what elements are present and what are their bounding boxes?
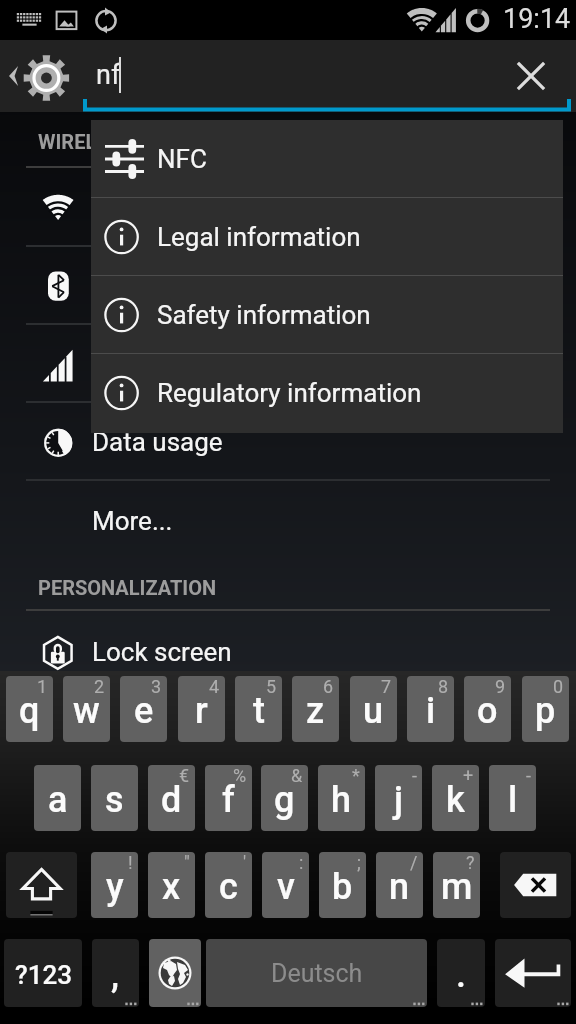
- button[interactable]: Change keyboard language: [149, 939, 201, 1007]
- button[interactable]: c: [205, 852, 252, 918]
- button[interactable]: b: [319, 852, 366, 918]
- button[interactable]: i: [407, 676, 454, 742]
- button[interactable]: d: [148, 765, 195, 831]
- staticText: 5: [266, 676, 277, 697]
- button[interactable]: Mobile networks: [0, 325, 576, 403]
- button[interactable]: Legal information: [91, 198, 563, 275]
- button[interactable]: Lock screen: [0, 615, 576, 689]
- staticText: ?123: [15, 960, 72, 990]
- staticText: ,: [111, 954, 120, 996]
- staticText: v: [277, 866, 295, 908]
- staticText: 0: [553, 676, 564, 697]
- staticText: Lock screen: [92, 637, 232, 667]
- button[interactable]: q: [6, 676, 53, 742]
- staticText: !: [128, 852, 133, 873]
- staticText: 4: [209, 676, 220, 697]
- button[interactable]: j: [375, 765, 422, 831]
- button[interactable]: Data usage: [0, 403, 576, 481]
- button[interactable]: Enter: [495, 939, 571, 1007]
- staticText: 6: [323, 676, 334, 697]
- staticText: Data usage: [92, 427, 223, 457]
- button[interactable]: t: [235, 676, 282, 742]
- staticText: 8: [438, 676, 449, 697]
- staticText: g: [274, 779, 295, 821]
- button[interactable]: Safety information: [91, 276, 563, 353]
- staticText: €: [179, 765, 190, 786]
- button[interactable]: f: [205, 765, 252, 831]
- button[interactable]: Wi-Fi: [0, 169, 576, 247]
- button[interactable]: Navigate up, Settings: [0, 40, 76, 112]
- staticText: s: [105, 779, 124, 821]
- staticText: ": [184, 852, 190, 873]
- staticText: &: [291, 765, 303, 786]
- staticText: u: [363, 690, 384, 732]
- staticText: Mobile networks: [92, 349, 284, 379]
- staticText: PERSONALIZATION: [38, 576, 217, 599]
- staticText: c: [219, 866, 238, 908]
- staticText: y: [106, 866, 124, 908]
- staticText: Legal information: [157, 222, 361, 252]
- staticText: ;: [357, 852, 361, 873]
- button[interactable]: g: [261, 765, 308, 831]
- staticText: ?: [466, 852, 475, 873]
- button[interactable]: a: [34, 765, 81, 831]
- staticText: -: [526, 765, 531, 786]
- staticText: :: [299, 852, 304, 873]
- button[interactable]: .: [437, 939, 485, 1007]
- staticText: o: [477, 690, 498, 732]
- button[interactable]: ?123: [4, 939, 82, 1007]
- button[interactable]: n: [376, 852, 423, 918]
- staticText: b: [332, 866, 353, 908]
- staticText: r: [195, 690, 208, 732]
- button[interactable]: w: [63, 676, 110, 742]
- staticText: j: [394, 779, 404, 821]
- staticText: m: [441, 866, 473, 908]
- staticText: +: [463, 765, 474, 786]
- button[interactable]: Regulatory information: [91, 354, 563, 432]
- button[interactable]: u: [350, 676, 397, 742]
- staticText: 3: [151, 676, 162, 697]
- staticText: e: [134, 690, 154, 732]
- button[interactable]: m: [433, 852, 480, 918]
- button[interactable]: ,: [92, 939, 139, 1007]
- staticText: a: [48, 779, 68, 821]
- button[interactable]: Backspace: [500, 852, 571, 918]
- staticText: l: [508, 779, 518, 821]
- button[interactable]: s: [91, 765, 138, 831]
- staticText: 9: [495, 676, 506, 697]
- button[interactable]: Clear search: [495, 40, 567, 112]
- button[interactable]: o: [464, 676, 511, 742]
- button[interactable]: NFC: [91, 120, 563, 197]
- button[interactable]: p: [522, 676, 569, 742]
- button[interactable]: e: [120, 676, 167, 742]
- staticText: *: [352, 765, 360, 786]
- staticText: q: [19, 690, 40, 732]
- staticText: 2: [94, 676, 105, 697]
- staticText: -: [412, 765, 417, 786]
- staticText: Regulatory information: [157, 378, 422, 408]
- button[interactable]: l: [489, 765, 536, 831]
- button[interactable]: x: [148, 852, 195, 918]
- staticText: Bluetooth: [92, 271, 204, 301]
- button[interactable]: Deutsch: [206, 939, 427, 1007]
- staticText: 19:14: [503, 3, 571, 35]
- staticText: n: [389, 866, 410, 908]
- button[interactable]: y: [91, 852, 138, 918]
- staticText: w: [73, 690, 100, 732]
- staticText: h: [331, 779, 352, 821]
- staticText: %: [233, 765, 247, 786]
- staticText: NFC: [157, 144, 207, 174]
- button[interactable]: z: [292, 676, 339, 742]
- button[interactable]: k: [432, 765, 479, 831]
- staticText: d: [161, 779, 182, 821]
- button[interactable]: v: [262, 852, 309, 918]
- staticText: nf: [96, 59, 121, 91]
- button[interactable]: h: [318, 765, 365, 831]
- button[interactable]: r: [178, 676, 225, 742]
- button[interactable]: Shift: [6, 852, 77, 918]
- button[interactable]: More...: [0, 483, 576, 559]
- staticText: More...: [92, 506, 173, 536]
- staticText: p: [535, 690, 556, 732]
- button[interactable]: Bluetooth: [0, 247, 576, 325]
- staticText: z: [306, 690, 325, 732]
